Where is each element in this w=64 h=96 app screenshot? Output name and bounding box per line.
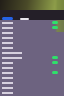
button[interactable] <box>0 90 64 95</box>
button[interactable] <box>0 85 64 90</box>
button[interactable] <box>0 20 64 25</box>
button[interactable] <box>0 65 64 70</box>
button[interactable] <box>0 35 64 40</box>
button[interactable] <box>0 55 64 60</box>
button[interactable]: Secondary action <box>20 18 29 20</box>
button[interactable] <box>0 45 64 50</box>
button[interactable] <box>0 75 64 80</box>
button[interactable] <box>0 80 64 85</box>
button[interactable] <box>0 40 64 45</box>
button[interactable] <box>0 60 64 65</box>
button[interactable] <box>0 50 64 55</box>
button[interactable] <box>0 25 64 30</box>
button[interactable] <box>0 70 64 75</box>
button[interactable] <box>0 30 64 35</box>
button[interactable]: Primary action <box>2 17 13 20</box>
